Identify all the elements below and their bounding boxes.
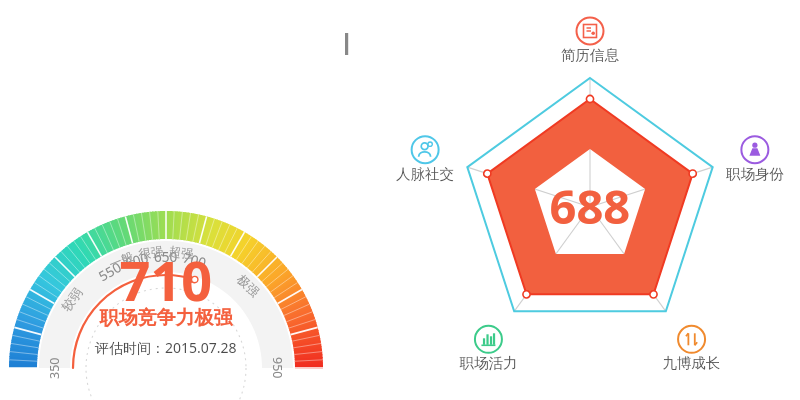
button[interactable]: 职场竞争力评估报告 bbox=[0, 0, 800, 400]
